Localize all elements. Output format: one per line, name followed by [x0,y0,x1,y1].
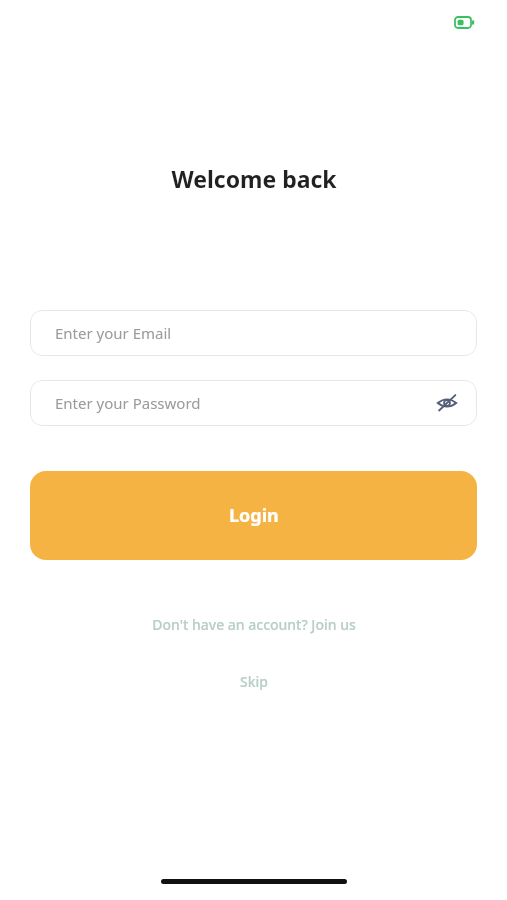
staticText: Skip [240,672,268,691]
button[interactable]: Enter your Password [30,380,477,426]
button[interactable]: Don't have an account? Join us [140,609,368,640]
staticText: Login [229,503,279,528]
button[interactable]: Skip [222,666,286,697]
staticText: Enter your Password [55,393,201,413]
staticText: Enter your Email [55,323,172,343]
staticText: Don't have an account? Join us [152,615,356,634]
button[interactable]: Login [30,471,477,560]
staticText: Welcome back [171,163,337,194]
button[interactable]: Enter your Email [30,310,477,356]
button[interactable]: Toggle password visibility [431,387,463,419]
